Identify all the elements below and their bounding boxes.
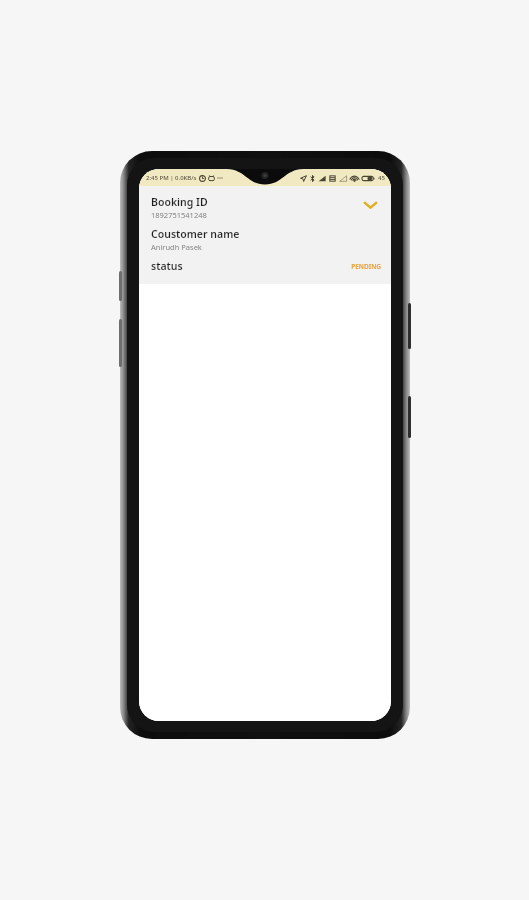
staticText: status — [151, 259, 333, 273]
button[interactable]: PENDING — [333, 262, 381, 271]
staticText: 1892751541248 — [151, 210, 207, 220]
staticText: Anirudh Pasek — [151, 242, 202, 252]
staticText: Coustomer name — [151, 227, 240, 241]
button[interactable]: Expand booking details — [359, 195, 381, 215]
button[interactable]: Booking ID — [139, 186, 391, 284]
staticText: 45 — [378, 174, 385, 182]
staticText: PENDING — [351, 262, 381, 271]
staticText: Booking ID — [151, 195, 208, 209]
staticText: 2:45 PM | 0.0KB/s — [146, 174, 197, 182]
